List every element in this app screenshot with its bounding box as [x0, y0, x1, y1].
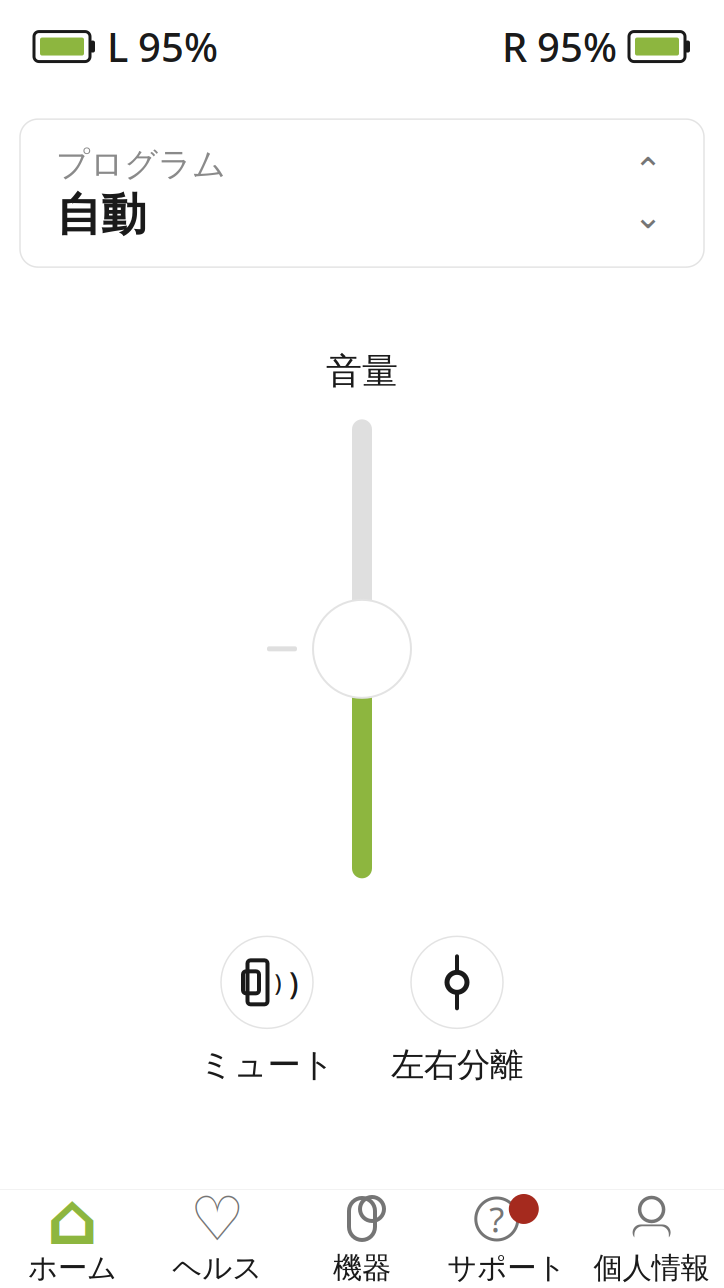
staticText: ⌄: [633, 197, 662, 236]
button[interactable]: プログラム: [20, 119, 704, 267]
button[interactable]: ⌂: [0, 1184, 145, 1288]
staticText: 左右分離: [391, 1044, 523, 1085]
staticText: ?: [489, 1196, 504, 1242]
staticText: 自動: [56, 187, 146, 242]
staticText: ミュート: [199, 1044, 334, 1085]
staticText: 機器: [333, 1250, 391, 1286]
staticText: R 95%: [502, 20, 617, 73]
staticText: L 95%: [107, 20, 218, 73]
button[interactable]: 個人情報: [579, 1184, 724, 1288]
staticText: ): [274, 967, 281, 997]
button[interactable]: ?: [434, 1184, 579, 1288]
staticText: サポート: [447, 1250, 566, 1286]
staticText: ホーム: [28, 1250, 117, 1286]
button[interactable]: 左右分離: [362, 936, 552, 1085]
button[interactable]: ミュート: [172, 936, 362, 1085]
staticText: ♡: [190, 1184, 245, 1254]
button[interactable]: ♡: [145, 1184, 290, 1288]
staticText: ヘルス: [172, 1250, 262, 1286]
staticText: プログラム: [56, 144, 226, 185]
staticText: ⌂: [46, 1178, 98, 1260]
staticText: ): [289, 962, 299, 1003]
button[interactable]: 機器: [290, 1184, 434, 1288]
staticText: 個人情報: [594, 1250, 710, 1286]
staticText: ⌃: [633, 150, 662, 190]
staticText: 音量: [326, 349, 398, 393]
